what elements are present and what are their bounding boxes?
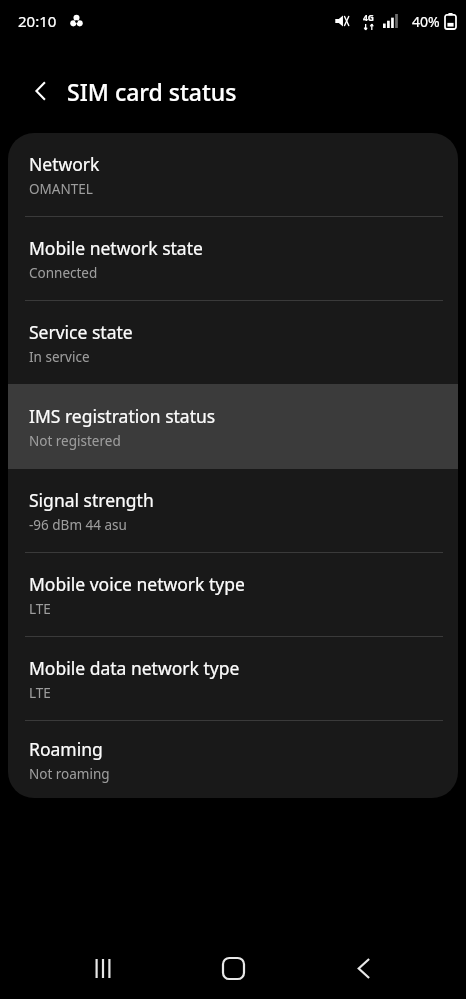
staticText: In service xyxy=(29,348,90,366)
staticText: Service state xyxy=(29,320,133,344)
staticText: SIM card status xyxy=(67,76,237,107)
button[interactable]: Mobile voice network type xyxy=(8,553,458,636)
staticText: Not roaming xyxy=(29,765,110,783)
button[interactable]: Network xyxy=(8,133,458,216)
staticText: Signal strength xyxy=(29,488,154,512)
staticText: 40% xyxy=(412,12,440,31)
staticText: LTE xyxy=(29,684,51,702)
button[interactable]: Mobile data network type xyxy=(8,637,458,720)
button[interactable]: Roaming xyxy=(8,721,458,798)
staticText: Mobile data network type xyxy=(29,656,240,680)
staticText: 20:10 xyxy=(18,11,57,31)
staticText: OMANTEL xyxy=(29,180,93,198)
button[interactable]: Back xyxy=(333,938,393,998)
staticText: Connected xyxy=(29,264,98,282)
button[interactable]: Back xyxy=(17,67,65,115)
button[interactable]: IMS registration status xyxy=(8,385,458,468)
button[interactable]: Service state xyxy=(8,301,458,384)
staticText: 4G xyxy=(363,12,375,24)
button[interactable]: Signal strength xyxy=(8,469,458,552)
staticText: Roaming xyxy=(29,737,103,761)
staticText: -96 dBm 44 asu xyxy=(29,516,127,534)
staticText: Network xyxy=(29,152,100,176)
staticText: Not registered xyxy=(29,432,121,450)
staticText: IMS registration status xyxy=(29,404,216,428)
staticText: Mobile network state xyxy=(29,236,203,260)
button[interactable]: Home xyxy=(203,938,263,998)
button[interactable]: Mobile network state xyxy=(8,217,458,300)
staticText: LTE xyxy=(29,600,51,618)
button[interactable]: Recents xyxy=(73,938,133,998)
staticText: Mobile voice network type xyxy=(29,572,245,596)
